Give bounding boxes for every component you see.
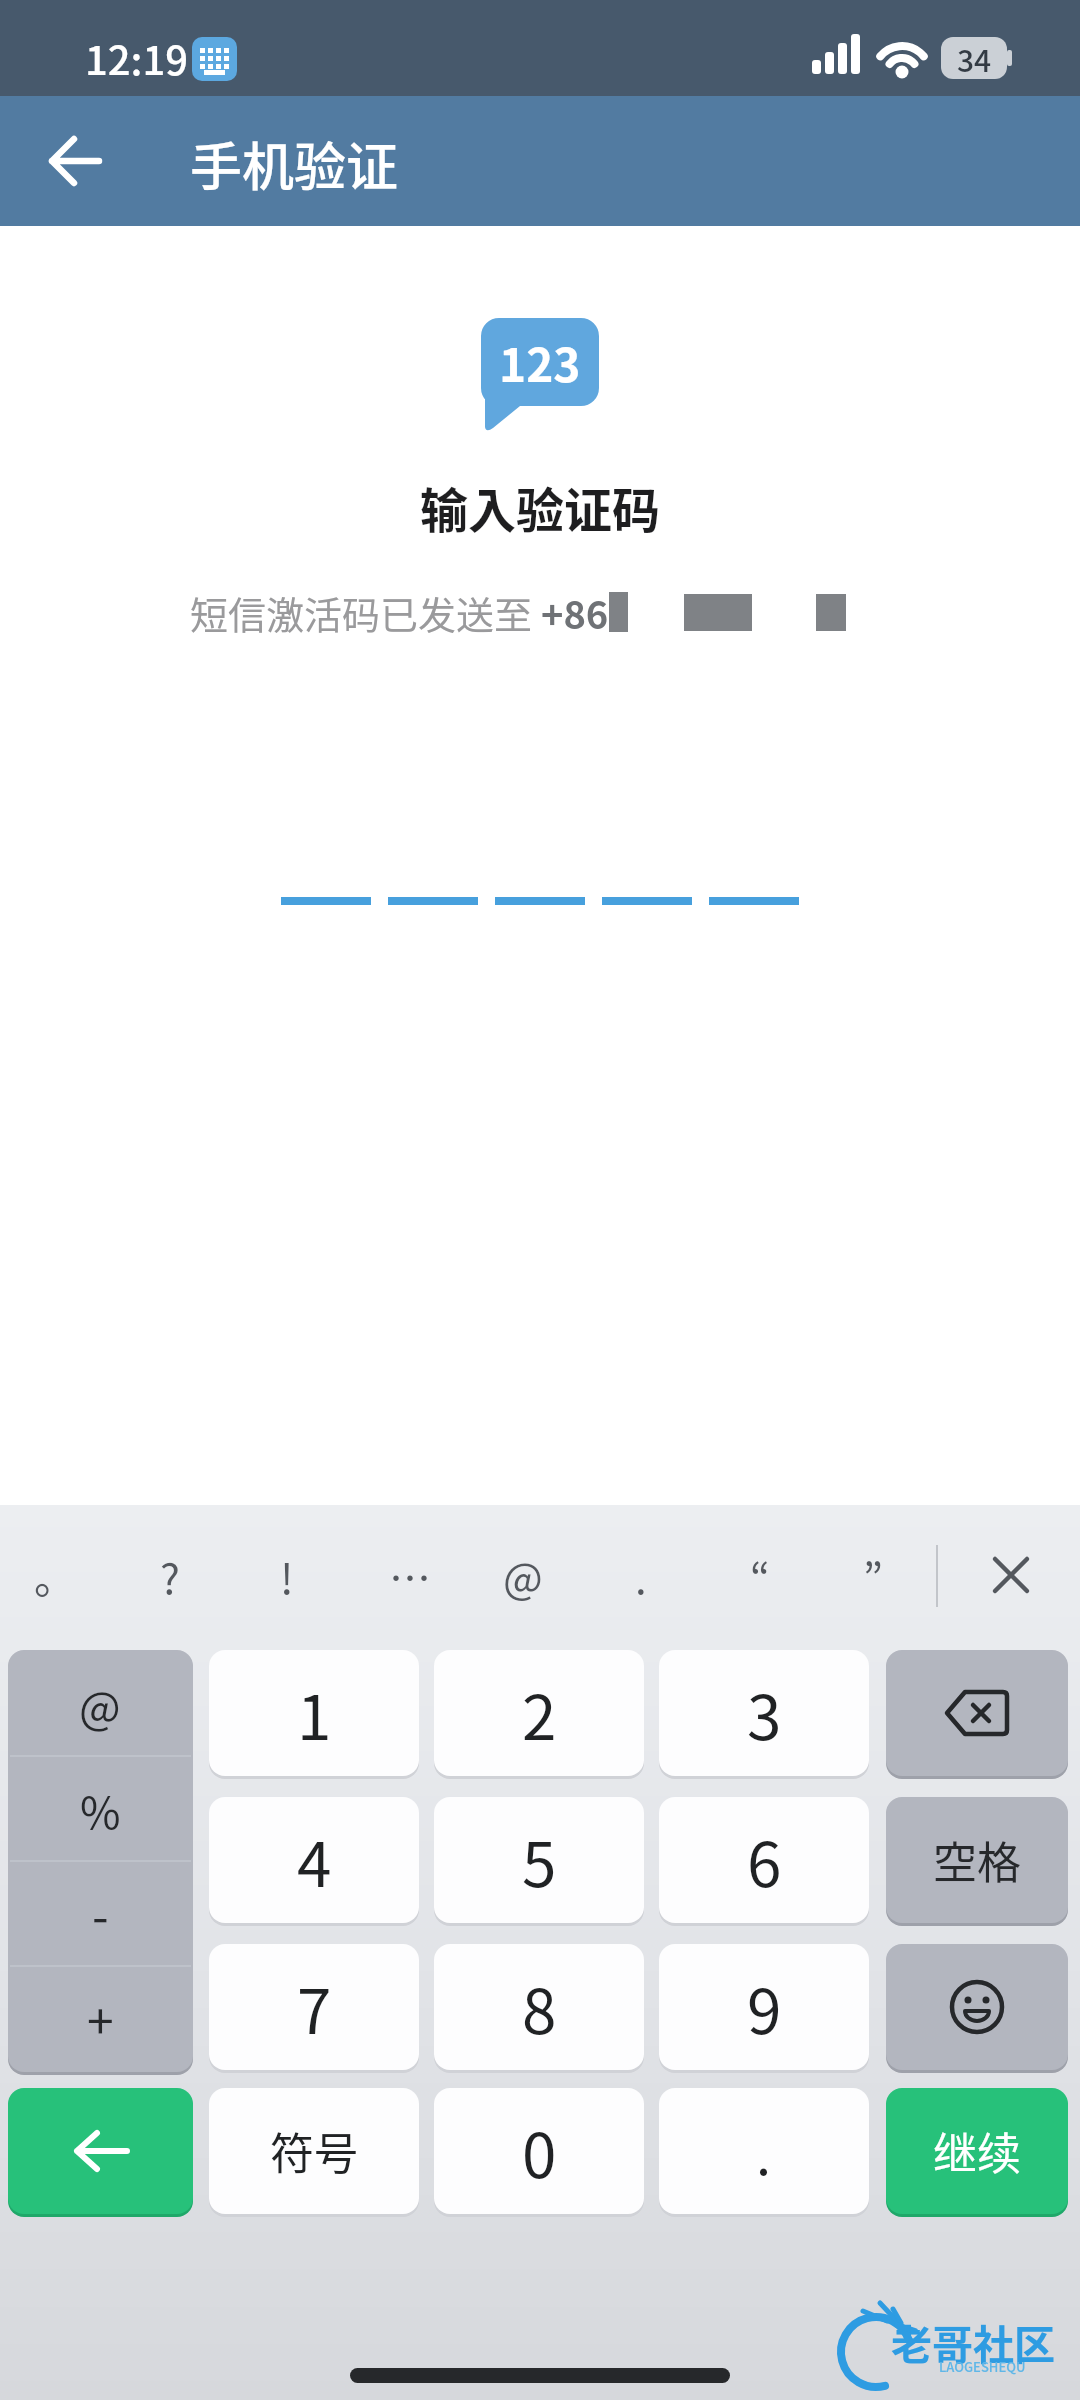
- button[interactable]: [963, 1510, 1058, 1640]
- staticText: @: [503, 1545, 543, 1606]
- staticText: 6: [747, 1815, 782, 1905]
- staticText: +86: [541, 585, 609, 640]
- button[interactable]: 4: [209, 1797, 419, 1923]
- button[interactable]: 7: [209, 1944, 419, 2070]
- staticText: ?: [160, 1545, 180, 1606]
- staticText: 9: [747, 1962, 782, 2052]
- button[interactable]: @: [473, 1510, 573, 1640]
- staticText: 手机验证: [190, 126, 399, 196]
- button[interactable]: 空格: [886, 1797, 1068, 1923]
- button[interactable]: .: [591, 1510, 691, 1640]
- staticText: 符号: [270, 2119, 358, 2183]
- button[interactable]: ”: [823, 1510, 923, 1640]
- staticText: 1: [297, 1668, 332, 1758]
- staticText: 12:19: [85, 29, 189, 87]
- button[interactable]: 。: [5, 1510, 105, 1640]
- button[interactable]: 5: [434, 1797, 644, 1923]
- staticText: 123: [499, 329, 581, 396]
- staticText: %: [80, 1778, 121, 1842]
- button[interactable]: 2: [434, 1650, 644, 1776]
- staticText: .: [756, 2112, 772, 2190]
- staticText: 4: [297, 1815, 332, 1905]
- staticText: LAOGESHEQU: [939, 2357, 1026, 2376]
- staticText: 输入验证码: [420, 472, 661, 542]
- button[interactable]: [8, 2088, 193, 2214]
- staticText: 2: [522, 1668, 557, 1758]
- staticText: 5: [522, 1815, 557, 1905]
- button[interactable]: “: [710, 1510, 810, 1640]
- button[interactable]: [886, 1944, 1068, 2070]
- staticText: 。: [34, 1545, 77, 1606]
- staticText: 3: [747, 1668, 782, 1758]
- staticText: “: [750, 1545, 770, 1606]
- staticText: +: [87, 1983, 114, 2053]
- button[interactable]: 9: [659, 1944, 869, 2070]
- staticText: 34: [957, 37, 992, 80]
- button[interactable]: ?: [120, 1510, 220, 1640]
- staticText: ”: [863, 1545, 883, 1606]
- button[interactable]: [886, 1650, 1068, 1776]
- button[interactable]: [30, 116, 120, 206]
- staticText: 7: [297, 1962, 332, 2052]
- staticText: …: [389, 1545, 432, 1606]
- staticText: 短信激活码已发送至: [190, 585, 541, 640]
- staticText: 8: [522, 1962, 557, 2052]
- staticText: .: [635, 1545, 647, 1606]
- staticText: 0: [522, 2106, 557, 2196]
- button[interactable]: 1: [209, 1650, 419, 1776]
- staticText: -: [92, 1878, 109, 1948]
- button[interactable]: …: [360, 1510, 460, 1640]
- button[interactable]: 3: [659, 1650, 869, 1776]
- staticText: 老哥社区: [891, 2312, 1055, 2371]
- button[interactable]: .: [659, 2088, 869, 2214]
- staticText: 空格: [933, 1828, 1021, 1892]
- button[interactable]: [8, 1650, 193, 2072]
- staticText: 继续: [933, 2119, 1021, 2183]
- button[interactable]: 8: [434, 1944, 644, 2070]
- button[interactable]: 继续: [886, 2088, 1068, 2214]
- button[interactable]: 符号: [209, 2088, 419, 2214]
- staticText: !: [280, 1545, 294, 1606]
- button[interactable]: !: [237, 1510, 337, 1640]
- button[interactable]: 0: [434, 2088, 644, 2214]
- button[interactable]: 6: [659, 1797, 869, 1923]
- staticText: @: [79, 1673, 121, 1737]
